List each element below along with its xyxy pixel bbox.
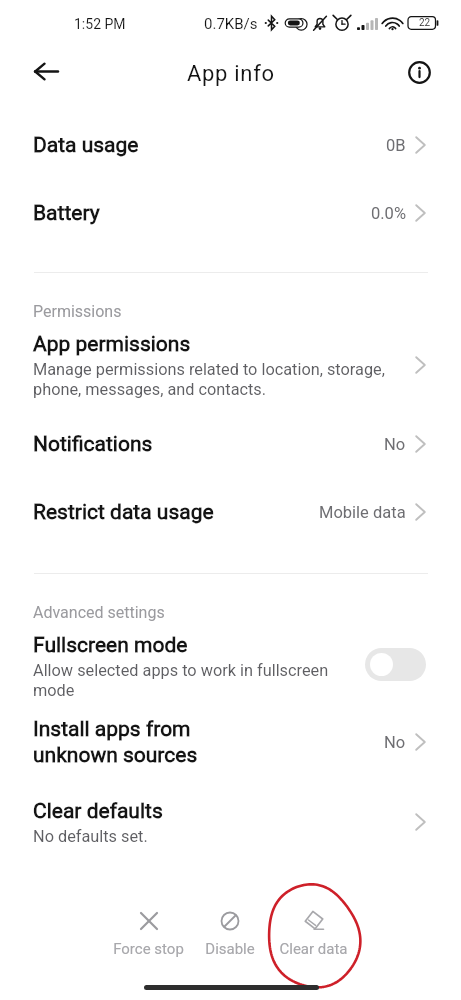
- staticText: 22: [419, 17, 431, 29]
- staticText: Permissions: [33, 302, 122, 321]
- staticText: 0.0%: [371, 204, 406, 223]
- staticText: Disable: [205, 940, 255, 958]
- staticText: App permissions: [33, 332, 191, 357]
- button[interactable]: Fullscreen mode toggle: [365, 648, 426, 681]
- staticText: No: [384, 435, 406, 454]
- button[interactable]: Battery: [0, 190, 461, 236]
- staticText: 0.7KB/s: [204, 15, 258, 33]
- button[interactable]: Clear defaults: [0, 792, 461, 852]
- button[interactable]: Fullscreen mode: [0, 625, 461, 705]
- button[interactable]: Disable: [180, 910, 280, 965]
- staticText: Install apps from unknown sources: [33, 717, 198, 767]
- button[interactable]: Back: [24, 49, 68, 93]
- staticText: Clear defaults: [33, 799, 163, 824]
- staticText: 1:52 PM: [74, 16, 126, 32]
- button[interactable]: Data usage: [0, 122, 461, 168]
- staticText: No: [384, 733, 406, 752]
- staticText: Advanced settings: [33, 603, 165, 622]
- staticText: No defaults set.: [33, 827, 333, 846]
- button[interactable]: App details: [399, 52, 439, 92]
- staticText: Force stop: [113, 940, 184, 958]
- button[interactable]: Notifications: [0, 421, 461, 467]
- button[interactable]: Restrict data usage: [0, 489, 461, 535]
- staticText: Data usage: [33, 133, 139, 158]
- staticText: Allow selected apps to work in fullscree…: [33, 661, 353, 700]
- button[interactable]: App permissions: [0, 326, 461, 404]
- staticText: Battery: [33, 201, 100, 226]
- staticText: Notifications: [33, 432, 153, 457]
- staticText: 0B: [386, 136, 406, 155]
- staticText: Fullscreen mode: [33, 633, 188, 658]
- staticText: Manage permissions related to location, …: [33, 360, 405, 399]
- staticText: Mobile data: [319, 503, 406, 522]
- button[interactable]: Force stop: [98, 910, 198, 965]
- button[interactable]: Clear data: [263, 910, 363, 965]
- staticText: Restrict data usage: [33, 500, 214, 525]
- staticText: App info: [187, 61, 275, 87]
- button[interactable]: Install apps from unknown sources: [0, 709, 461, 775]
- staticText: Clear data: [279, 940, 348, 958]
